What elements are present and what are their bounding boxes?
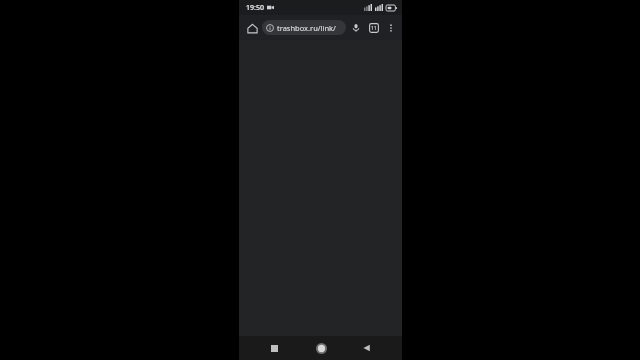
staticText: 19:50 [246, 3, 264, 13]
button[interactable]: Switch tabs [365, 19, 383, 37]
button[interactable]: trashbox.ru/link/ [262, 20, 346, 35]
button[interactable]: Home [242, 18, 262, 38]
button[interactable]: Recent apps [262, 336, 286, 360]
button[interactable]: Back [355, 336, 379, 360]
staticText: 11 [371, 25, 377, 32]
button[interactable]: More options [383, 20, 399, 36]
staticText: trashbox.ru/link/ [277, 23, 336, 33]
button[interactable]: Voice search [347, 19, 365, 37]
button[interactable]: Home [309, 336, 333, 360]
